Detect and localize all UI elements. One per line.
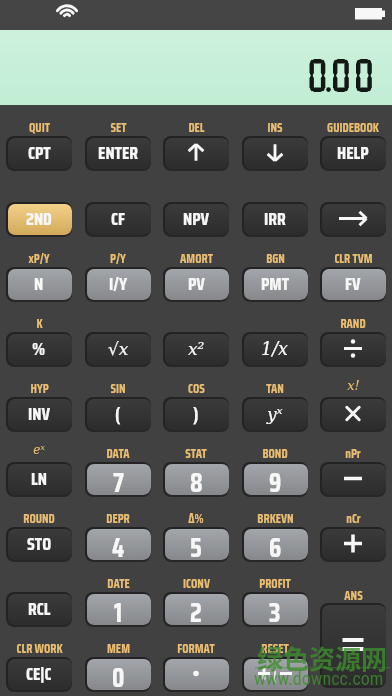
staticText: 7 bbox=[113, 462, 124, 495]
staticText: ANS bbox=[344, 586, 363, 606]
button[interactable]: 4 bbox=[85, 527, 151, 560]
staticText: ) bbox=[193, 399, 199, 429]
staticText: SET bbox=[110, 118, 127, 138]
staticText: TAN bbox=[266, 379, 284, 399]
staticText: 绿色资源网 bbox=[257, 639, 388, 677]
button[interactable]: RCL bbox=[6, 592, 72, 625]
button[interactable]: IRR bbox=[242, 202, 308, 235]
staticText: ICONV bbox=[183, 574, 210, 594]
staticText: x² bbox=[188, 339, 205, 359]
staticText: INV bbox=[28, 400, 51, 428]
button[interactable]: 0 bbox=[85, 657, 151, 690]
staticText: nCr bbox=[346, 509, 361, 529]
staticText: NPV bbox=[183, 205, 210, 233]
button[interactable]: CF bbox=[85, 202, 151, 235]
staticText: 1/x bbox=[261, 339, 289, 359]
staticText: 4 bbox=[112, 527, 125, 560]
staticText: COS bbox=[188, 379, 205, 399]
button[interactable]: Right arrow bbox=[320, 202, 386, 235]
button[interactable]: 7 bbox=[85, 462, 151, 495]
staticText: IRR bbox=[264, 205, 286, 233]
button[interactable]: CE|C bbox=[6, 657, 72, 690]
staticText: HELP bbox=[337, 139, 369, 167]
staticText: 2ND bbox=[26, 205, 52, 233]
button[interactable]: ) bbox=[163, 397, 229, 430]
staticText: CF bbox=[111, 205, 125, 233]
button[interactable]: N bbox=[6, 267, 72, 300]
staticText: www.downcc.com bbox=[254, 668, 384, 689]
staticText: 1 bbox=[114, 592, 123, 625]
staticText: 3 bbox=[269, 592, 281, 625]
button[interactable]: PV bbox=[163, 267, 229, 300]
staticText: PV bbox=[188, 270, 205, 298]
button[interactable]: Minus bbox=[320, 462, 386, 495]
button[interactable]: Equals bbox=[320, 603, 386, 686]
button[interactable]: I/Y bbox=[85, 267, 151, 300]
button[interactable]: 2ND bbox=[6, 202, 72, 235]
staticText: DEPR bbox=[106, 509, 130, 529]
button[interactable]: HELP bbox=[320, 136, 386, 169]
staticText: P/Y bbox=[110, 249, 126, 269]
button[interactable]: 3 bbox=[242, 592, 308, 625]
staticText: SIN bbox=[110, 379, 126, 399]
button[interactable]: Multiply bbox=[320, 397, 386, 430]
staticText: RAND bbox=[340, 314, 366, 334]
staticText: 9 bbox=[269, 462, 282, 495]
staticText: PMT bbox=[261, 270, 290, 298]
button[interactable]: 2 bbox=[163, 592, 229, 625]
button[interactable]: Up bbox=[163, 136, 229, 169]
staticText: AMORT bbox=[180, 249, 213, 269]
staticText: ROUND bbox=[23, 509, 55, 529]
staticText: FORMAT bbox=[177, 639, 215, 659]
staticText: yˣ bbox=[267, 404, 283, 424]
button[interactable]: PMT bbox=[242, 267, 308, 300]
button[interactable]: 6 bbox=[242, 527, 308, 560]
button[interactable]: Decimal point bbox=[163, 657, 229, 690]
staticText: DEL bbox=[188, 118, 205, 138]
staticText: CE|C bbox=[26, 660, 52, 688]
staticText: FV bbox=[345, 270, 361, 298]
staticText: GUIDEBOOK bbox=[327, 118, 379, 138]
button[interactable]: CPT bbox=[6, 136, 72, 169]
staticText: K bbox=[36, 314, 43, 334]
button[interactable]: 9 bbox=[242, 462, 308, 495]
staticText: ( bbox=[115, 399, 121, 429]
button[interactable]: 1 bbox=[85, 592, 151, 625]
staticText: √x bbox=[108, 339, 129, 359]
staticText: nPr bbox=[345, 444, 361, 464]
button[interactable]: Down bbox=[242, 136, 308, 169]
button[interactable]: FV bbox=[320, 267, 386, 300]
staticText: BOND bbox=[262, 444, 288, 464]
button[interactable]: yˣ bbox=[242, 397, 308, 430]
staticText: RCL bbox=[28, 595, 51, 623]
staticText: 8 bbox=[190, 462, 203, 495]
staticText: HYP bbox=[30, 379, 49, 399]
staticText: BRKEVN bbox=[257, 509, 294, 529]
staticText: 0 bbox=[112, 657, 125, 690]
button[interactable]: 8 bbox=[163, 462, 229, 495]
button[interactable]: LN bbox=[6, 462, 72, 495]
staticText: xP/Y bbox=[28, 249, 50, 269]
button[interactable]: x² bbox=[163, 332, 229, 365]
button[interactable]: NPV bbox=[163, 202, 229, 235]
button[interactable]: % bbox=[6, 332, 72, 365]
staticText: MEM bbox=[107, 639, 130, 659]
button[interactable]: √x bbox=[85, 332, 151, 365]
staticText: ENTER bbox=[98, 139, 139, 167]
button[interactable]: 1/x bbox=[242, 332, 308, 365]
button[interactable]: ( bbox=[85, 397, 151, 430]
button[interactable]: Plus minus sign bbox=[242, 657, 308, 690]
staticText: I/Y bbox=[109, 270, 128, 298]
staticText: 6 bbox=[269, 527, 282, 560]
staticText: CPT bbox=[28, 139, 51, 167]
staticText: DATA bbox=[106, 444, 130, 464]
button[interactable]: Plus bbox=[320, 527, 386, 560]
staticText: LN bbox=[31, 465, 47, 493]
button[interactable]: INV bbox=[6, 397, 72, 430]
button[interactable]: ENTER bbox=[85, 136, 151, 169]
button[interactable]: 5 bbox=[163, 527, 229, 560]
staticText: RESET bbox=[261, 639, 289, 659]
button[interactable]: STO bbox=[6, 527, 72, 560]
staticText: CLR WORK bbox=[16, 639, 63, 659]
button[interactable]: Divide bbox=[320, 332, 386, 365]
